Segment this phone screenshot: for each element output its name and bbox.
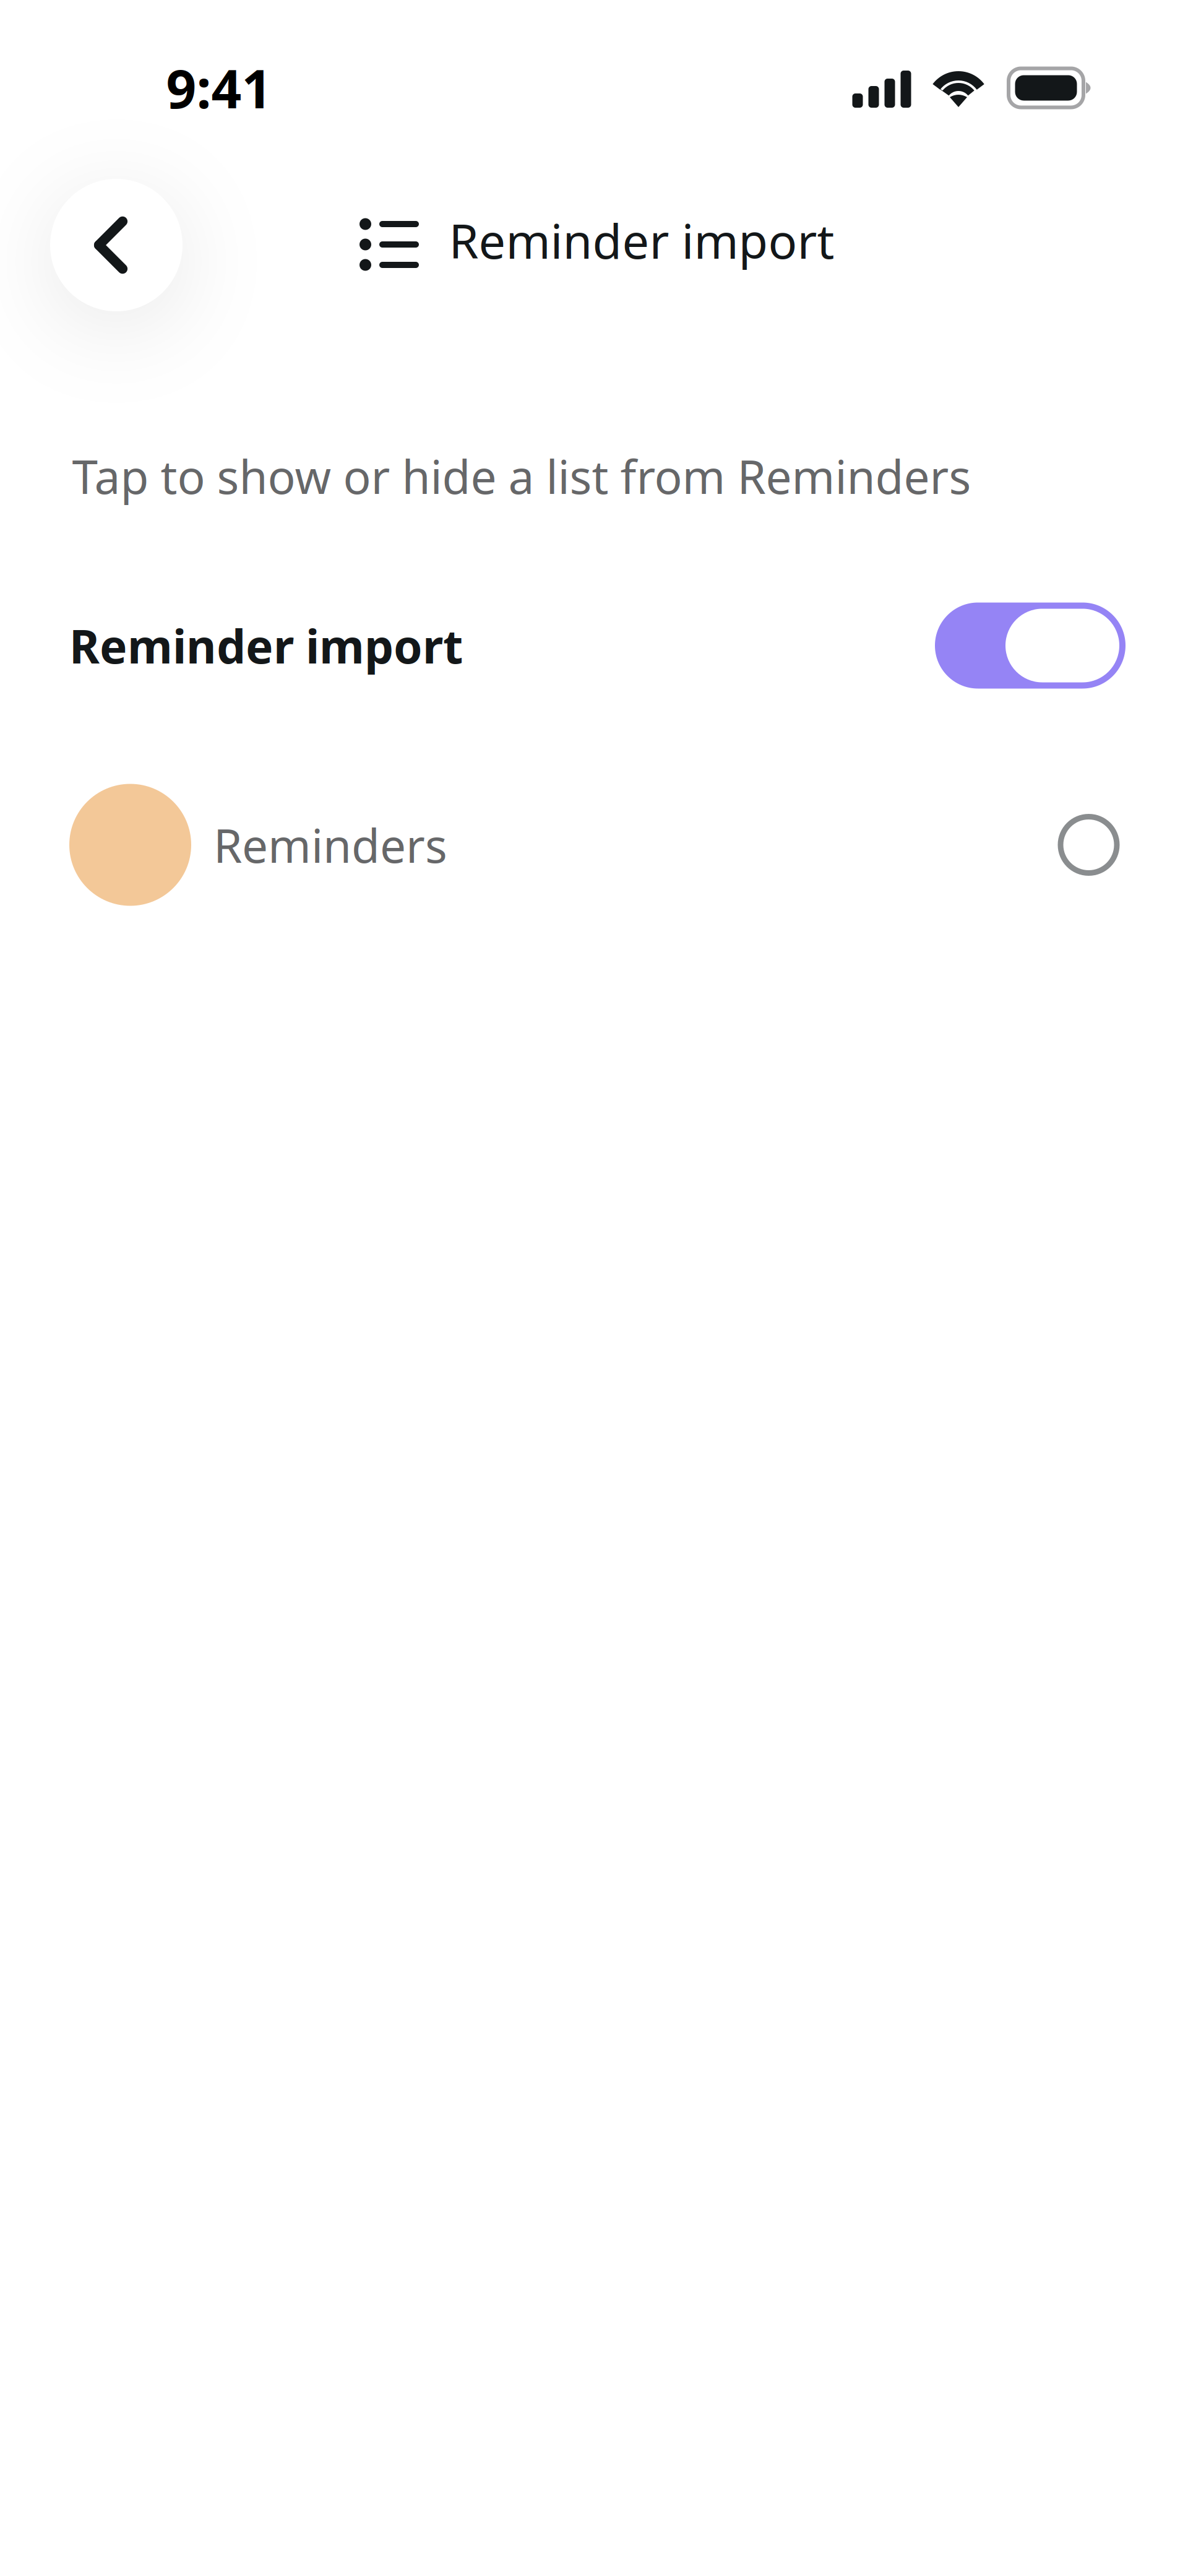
staticText: Tap to show or hide a list from Reminder… — [72, 445, 971, 507]
button[interactable]: Reminders — [0, 774, 1188, 916]
button[interactable]: Reminder import — [0, 584, 1188, 707]
staticText: Reminder import — [449, 208, 834, 272]
staticText: Reminders — [213, 814, 447, 876]
staticText: Reminder import — [69, 615, 463, 676]
staticText: 9:41 — [166, 53, 272, 123]
button[interactable]: Back — [50, 179, 183, 311]
